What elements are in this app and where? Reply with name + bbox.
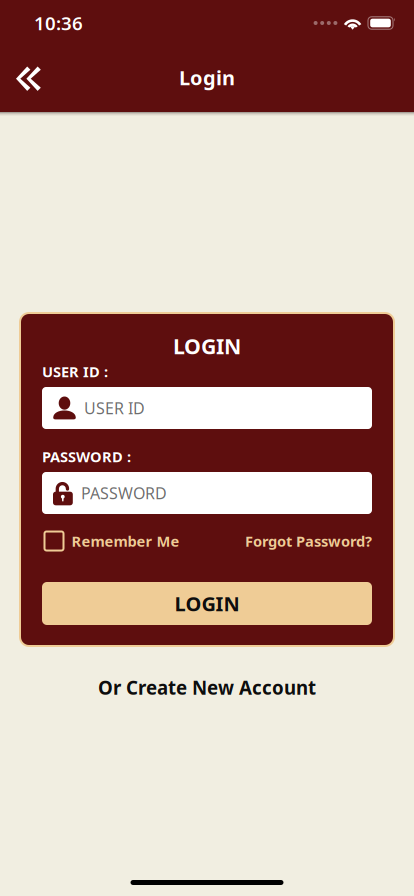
- staticText: PASSWORD: [81, 482, 167, 504]
- staticText: 10:36: [34, 11, 83, 35]
- staticText: Login: [179, 64, 235, 91]
- staticText: LOGIN: [173, 332, 241, 360]
- staticText: Remember Me: [71, 531, 179, 551]
- button[interactable]: Remember Me: [42, 531, 179, 551]
- staticText: Or Create New Account: [98, 675, 316, 700]
- staticText: USER ID: [84, 397, 145, 419]
- button[interactable]: Back: [0, 53, 58, 104]
- staticText: PASSWORD :: [42, 447, 131, 466]
- button[interactable]: LOGIN: [42, 582, 372, 625]
- button[interactable]: Forgot Password?: [245, 531, 372, 551]
- staticText: LOGIN: [174, 590, 239, 617]
- staticText: Forgot Password?: [245, 531, 372, 551]
- staticText: USER ID :: [42, 362, 108, 381]
- button[interactable]: Or Create New Account: [78, 646, 336, 712]
